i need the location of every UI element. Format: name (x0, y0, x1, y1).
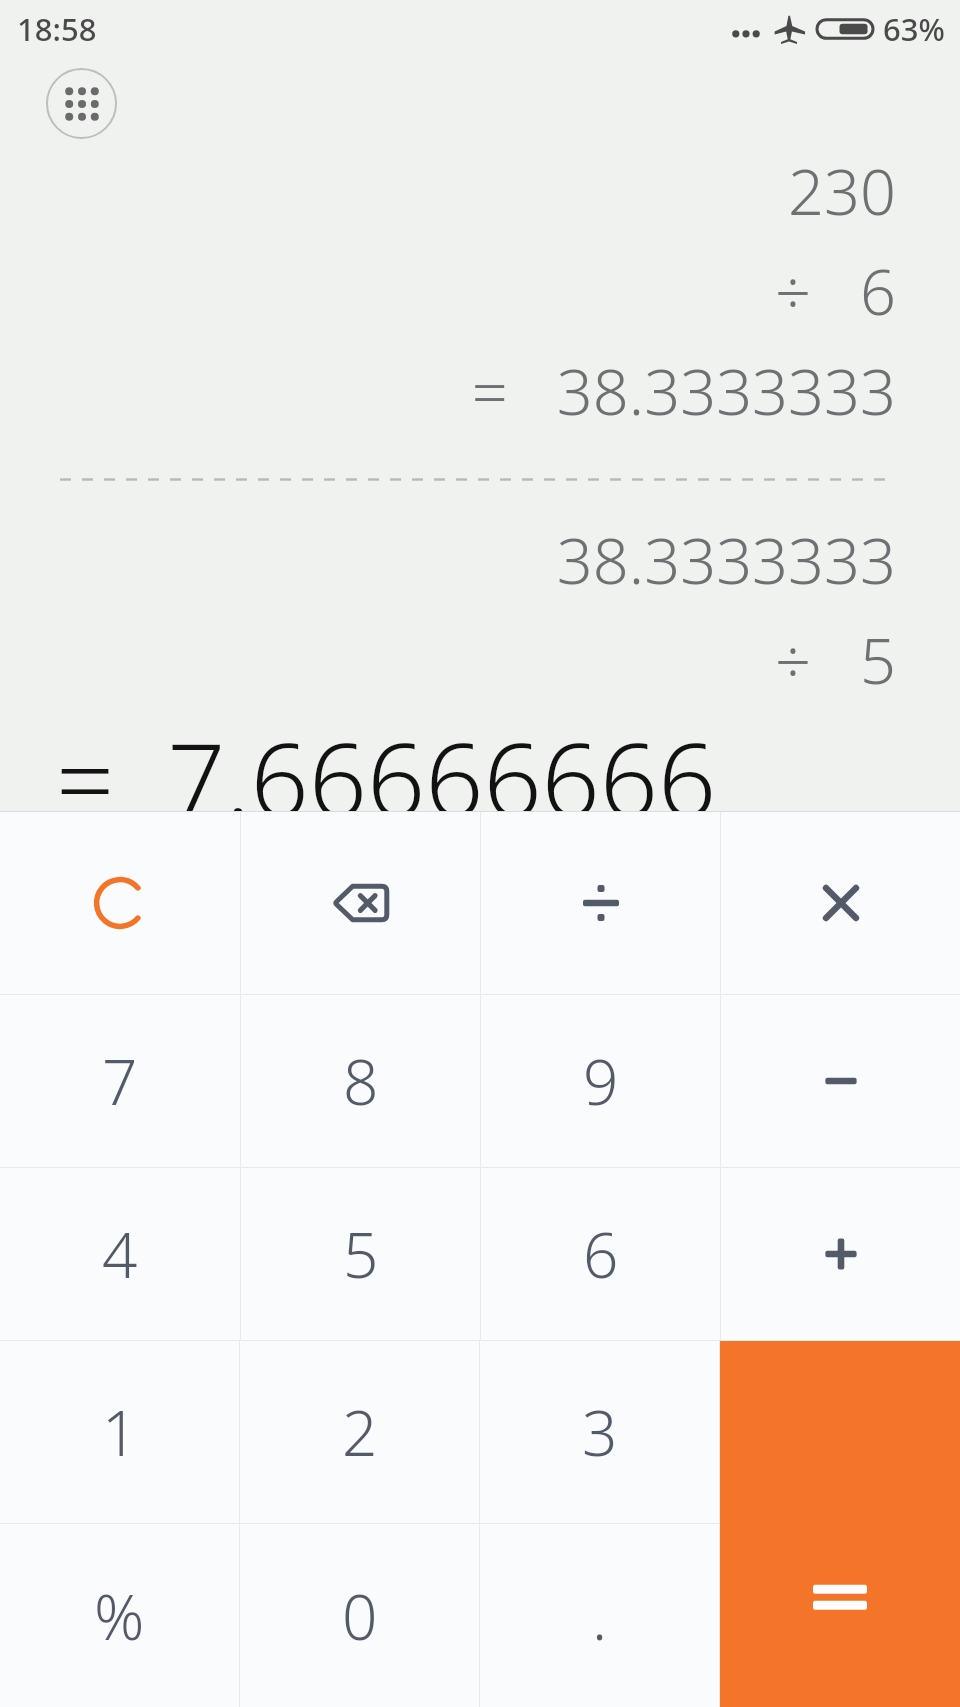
button[interactable]: Equals (720, 1341, 960, 1707)
staticText: 0 (342, 1574, 378, 1658)
button[interactable]: Minus (721, 995, 960, 1167)
staticText: 63% (883, 8, 945, 50)
staticText: 2 (342, 1390, 378, 1474)
button[interactable]: Plus (721, 1168, 960, 1340)
staticText: 230 (788, 148, 896, 234)
staticText: ÷ 5 (774, 617, 896, 703)
button[interactable]: 5 (241, 1168, 480, 1340)
button[interactable]: Divide (481, 812, 720, 994)
button[interactable]: Multiply (721, 812, 960, 994)
staticText: = 38.3333333 (471, 348, 896, 434)
staticText: ÷ 6 (774, 248, 896, 334)
button[interactable]: Clear (0, 812, 240, 994)
button[interactable]: 9 (481, 995, 720, 1167)
staticText: 38.3333333 (556, 517, 896, 603)
button[interactable]: 4 (0, 1168, 240, 1340)
staticText: 6 (583, 1212, 619, 1296)
button[interactable]: Apps (46, 68, 117, 139)
staticText: 5 (343, 1212, 379, 1296)
staticText: 9 (583, 1039, 619, 1123)
button[interactable]: 6 (481, 1168, 720, 1340)
staticText: 7 (102, 1039, 138, 1123)
staticText: % (94, 1574, 145, 1658)
staticText: 1 (102, 1390, 138, 1474)
staticText: 4 (102, 1212, 138, 1296)
staticText: 8 (343, 1039, 379, 1123)
staticText: 3 (582, 1390, 618, 1474)
button[interactable]: 7 (0, 995, 240, 1167)
button[interactable]: 1 (0, 1341, 239, 1523)
staticText: = 7.66666666 (56, 708, 717, 811)
button[interactable]: 0 (240, 1524, 479, 1707)
button[interactable]: 2 (240, 1341, 479, 1523)
staticText: 18:58 (17, 8, 97, 50)
button[interactable]: Backspace (241, 812, 480, 994)
button[interactable]: % (0, 1524, 239, 1707)
button[interactable]: 3 (480, 1341, 719, 1523)
staticText: . (592, 1574, 608, 1658)
button[interactable]: . (480, 1524, 719, 1707)
button[interactable]: 8 (241, 995, 480, 1167)
